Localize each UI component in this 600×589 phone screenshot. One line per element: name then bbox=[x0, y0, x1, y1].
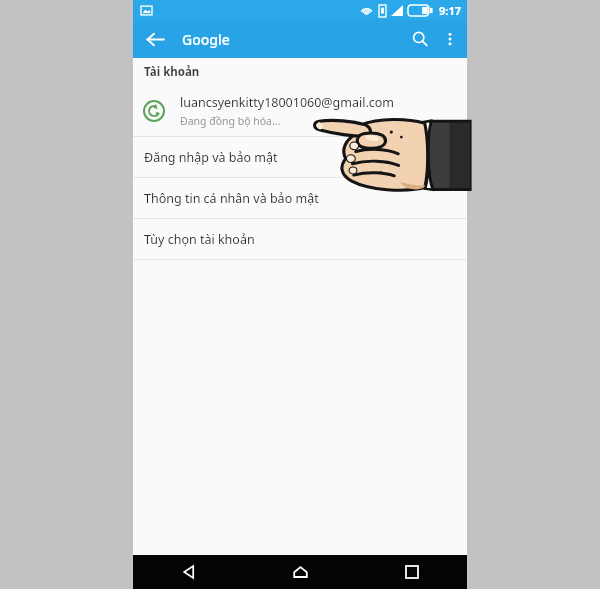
staticText: 9:17 bbox=[439, 3, 461, 18]
staticText: Tài khoản bbox=[144, 64, 200, 80]
button[interactable]: luancsyenkitty18001060@gmail.com bbox=[133, 85, 467, 136]
staticText: Thông tin cá nhân và bảo mật bbox=[144, 190, 319, 207]
button[interactable]: Tùy chọn tài khoản bbox=[133, 219, 467, 259]
button[interactable]: Back bbox=[138, 22, 172, 56]
button[interactable]: Thông tin cá nhân và bảo mật bbox=[133, 178, 467, 218]
button[interactable]: More options bbox=[435, 24, 465, 54]
staticText: Google bbox=[182, 30, 230, 49]
staticText: Tùy chọn tài khoản bbox=[144, 231, 255, 248]
button[interactable]: Search bbox=[403, 22, 437, 56]
staticText: Đang đồng bộ hóa... bbox=[180, 114, 281, 128]
button[interactable]: Recent apps bbox=[356, 555, 467, 589]
button[interactable]: Back bbox=[133, 555, 245, 589]
button[interactable]: Home bbox=[245, 555, 356, 589]
staticText: luancsyenkitty18001060@gmail.com bbox=[180, 94, 395, 111]
staticText: Đăng nhập và bảo mật bbox=[144, 149, 278, 166]
button[interactable]: Đăng nhập và bảo mật bbox=[133, 137, 467, 177]
